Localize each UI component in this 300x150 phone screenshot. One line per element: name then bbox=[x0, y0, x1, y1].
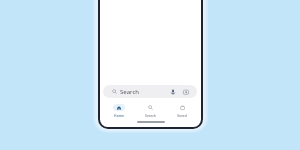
button[interactable]: Search bbox=[134, 98, 166, 118]
staticText: Home bbox=[114, 113, 124, 118]
staticText: Search bbox=[145, 113, 156, 118]
staticText: Search bbox=[120, 88, 139, 96]
button[interactable]: Search by voice bbox=[168, 87, 177, 96]
staticText: Saved bbox=[177, 113, 187, 118]
other: Google Lens bbox=[183, 89, 189, 95]
button[interactable]: Saved bbox=[166, 98, 198, 118]
button[interactable]: Search bbox=[103, 85, 197, 98]
button[interactable]: Home bbox=[103, 98, 134, 118]
other: Voice search bbox=[170, 89, 176, 95]
button[interactable]: Search with Google Lens bbox=[181, 87, 190, 96]
